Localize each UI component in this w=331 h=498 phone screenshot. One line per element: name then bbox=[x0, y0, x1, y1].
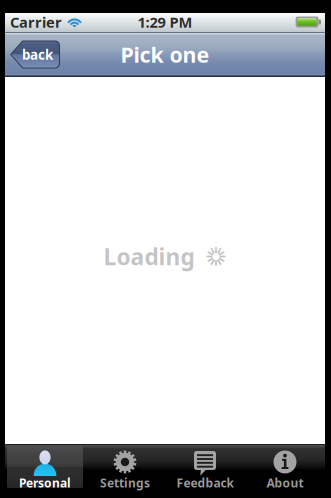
button[interactable]: Feedback bbox=[165, 444, 245, 491]
staticText: Feedback bbox=[176, 475, 233, 491]
staticText: Personal bbox=[19, 475, 71, 491]
staticText: Settings bbox=[100, 475, 150, 491]
button[interactable]: About bbox=[245, 444, 325, 491]
button[interactable]: back bbox=[10, 40, 60, 68]
button[interactable]: Personal bbox=[5, 444, 85, 491]
staticText: Carrier bbox=[10, 12, 62, 32]
staticText: 1:29 PM bbox=[137, 12, 192, 32]
staticText: back bbox=[22, 46, 53, 63]
button[interactable]: Settings bbox=[85, 444, 165, 491]
staticText: About bbox=[266, 475, 303, 491]
staticText: Loading bbox=[103, 241, 194, 271]
staticText: Pick one bbox=[120, 40, 209, 69]
